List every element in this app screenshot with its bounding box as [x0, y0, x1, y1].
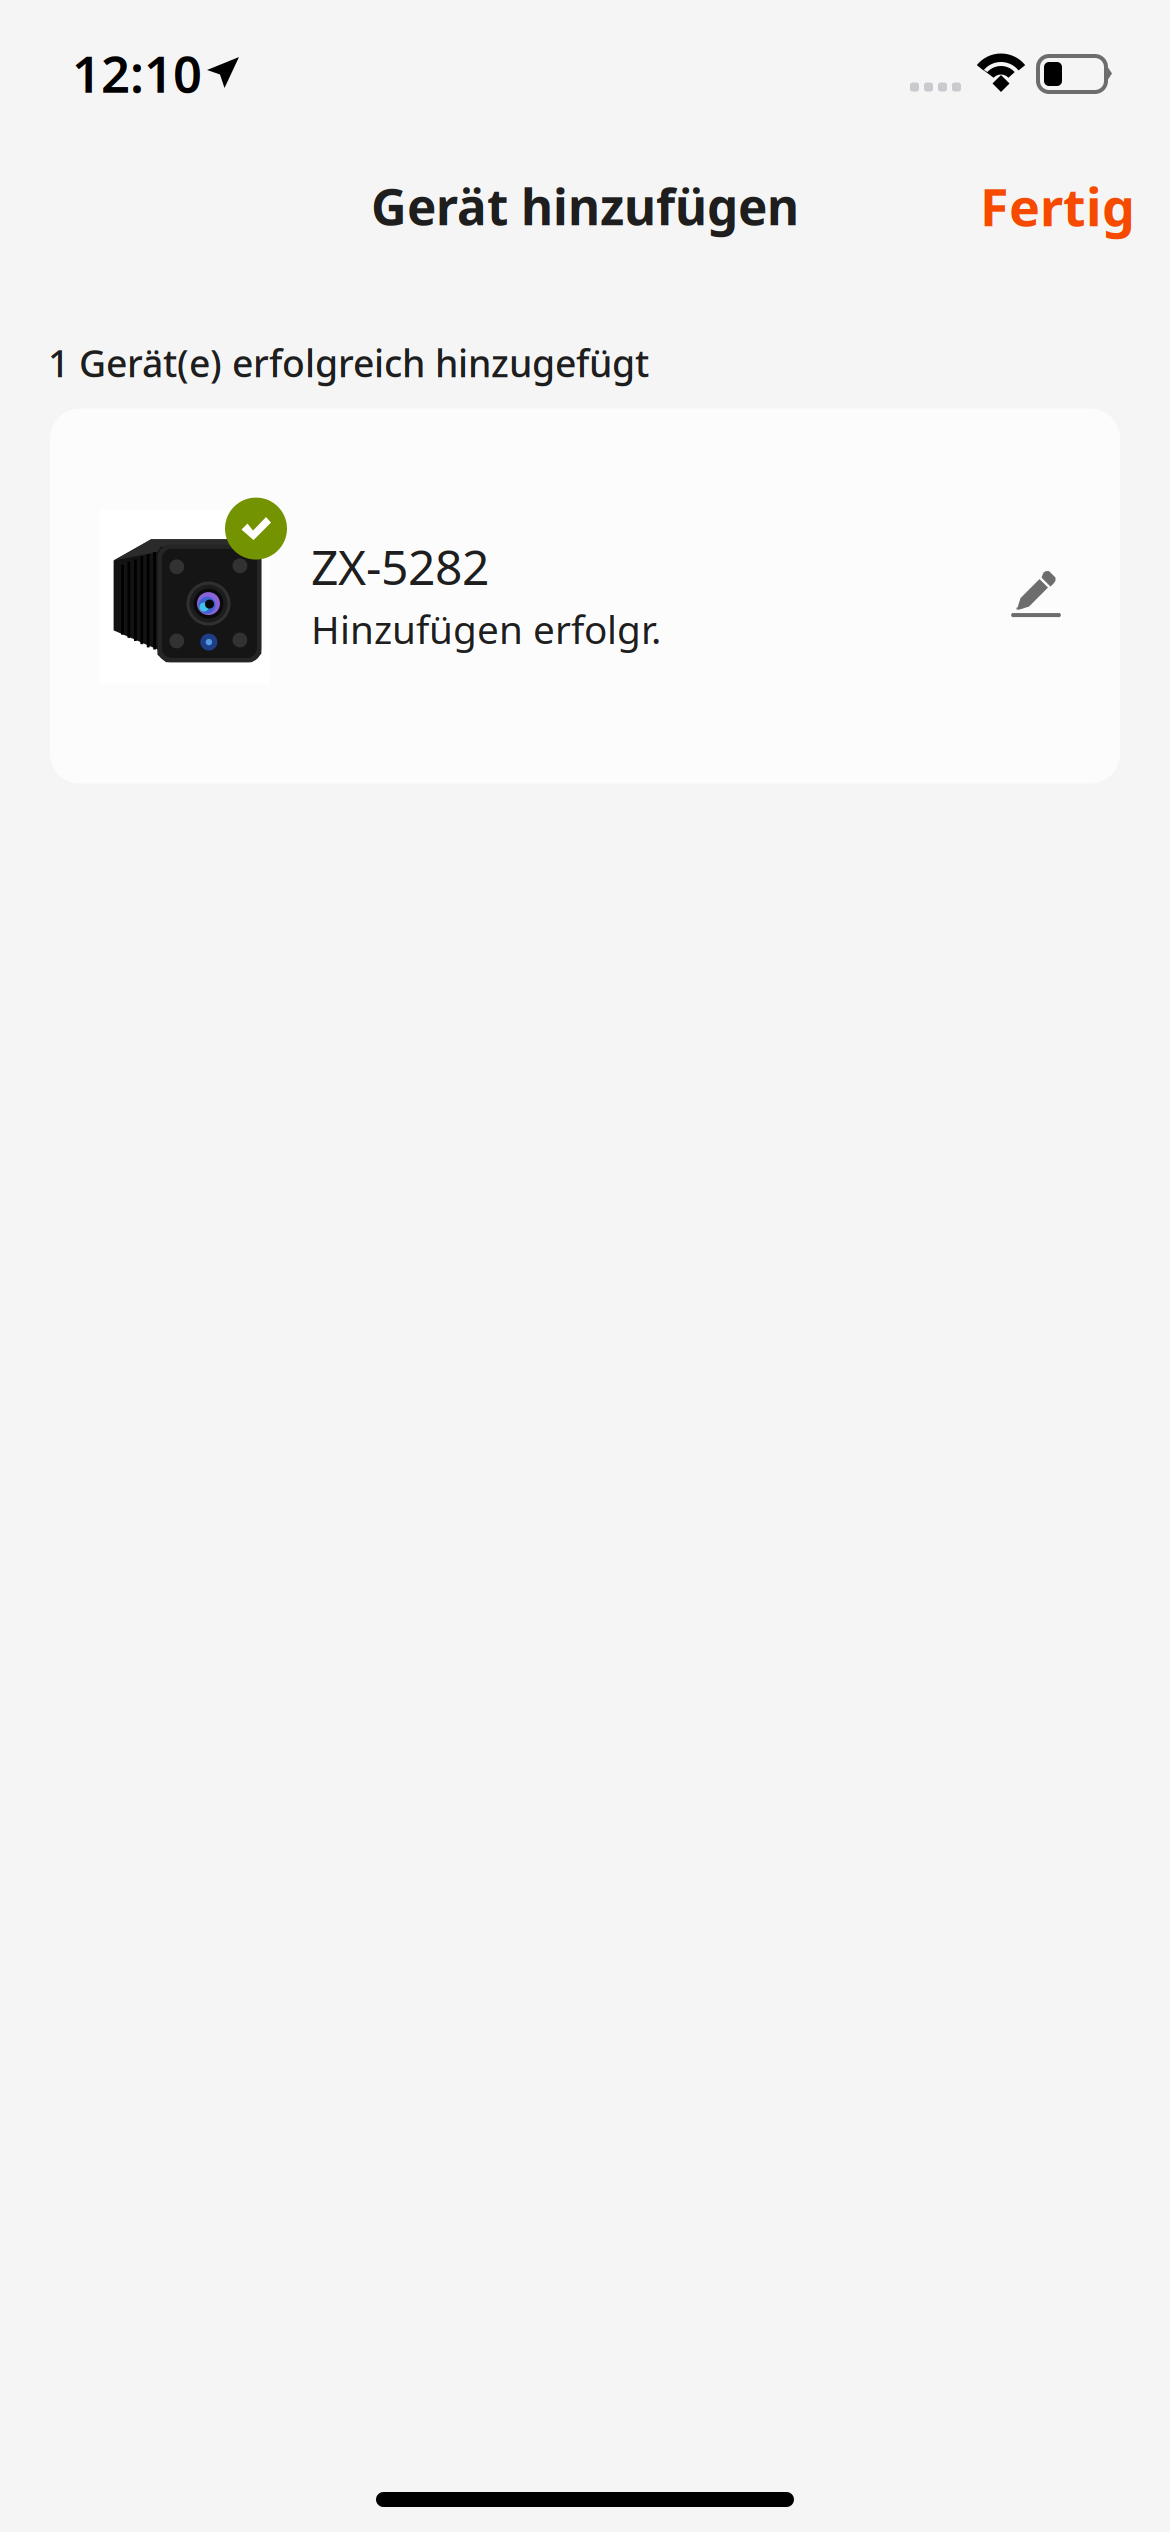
staticText: Fertig [980, 171, 1135, 241]
button[interactable]: ZX-5282 [100, 501, 661, 687]
staticText: Hinzufügen erfolgr. [311, 603, 661, 655]
staticText: Gerät hinzufügen [371, 173, 799, 239]
staticText: 12:10 [72, 39, 202, 107]
button[interactable]: Gerät umbenennen [991, 550, 1081, 639]
staticText: 1 Gerät(e) erfolgreich hinzugefügt [48, 338, 649, 388]
button[interactable]: Fertig [960, 155, 1155, 257]
staticText: ZX-5282 [311, 535, 489, 598]
